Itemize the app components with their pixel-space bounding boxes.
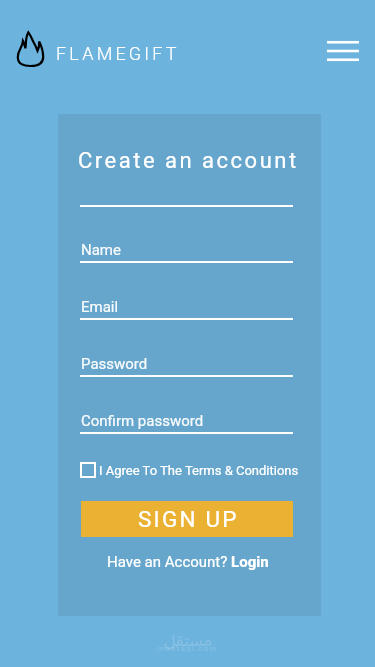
button[interactable]: I Agree To The Terms & Conditions xyxy=(81,459,299,481)
staticText: Password xyxy=(81,355,148,373)
button[interactable]: Menu xyxy=(324,32,362,70)
staticText: مستقل xyxy=(164,624,212,658)
staticText: Create an account xyxy=(78,148,299,174)
button[interactable]: Confirm password xyxy=(80,408,293,436)
button[interactable]: Have an Account? Login xyxy=(107,553,269,571)
staticText: Email xyxy=(81,298,119,316)
button[interactable]: Name xyxy=(80,237,293,265)
staticText: Confirm password xyxy=(81,412,204,430)
staticText: I Agree To The Terms & Conditions xyxy=(99,463,299,478)
button[interactable]: Password xyxy=(80,351,293,379)
button[interactable]: SIGN UP xyxy=(81,501,293,537)
staticText: mostaql.com xyxy=(157,644,218,653)
staticText: SIGN UP xyxy=(138,506,239,532)
other: FlameGift logo xyxy=(17,32,44,66)
button[interactable]: Email xyxy=(80,294,293,322)
staticText: Name xyxy=(81,241,121,259)
staticText: FLAMEGIFT xyxy=(56,43,180,64)
